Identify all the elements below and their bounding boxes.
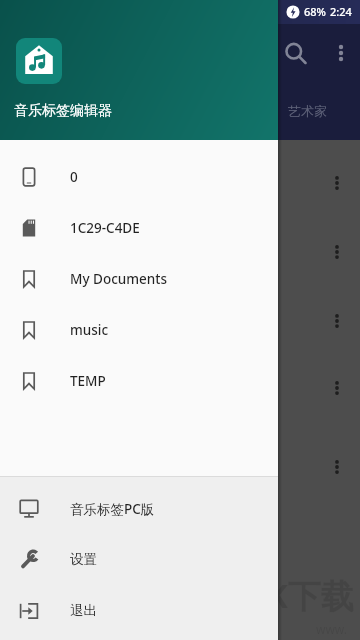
staticText: 设置 <box>70 551 97 568</box>
staticText: 0 <box>70 168 78 186</box>
button[interactable]: 设置 <box>0 534 278 585</box>
staticText: 退出 <box>70 602 97 619</box>
staticText: KK下载 <box>244 573 354 618</box>
button[interactable]: 0 <box>0 151 278 202</box>
button[interactable]: Item options <box>326 172 348 194</box>
button[interactable]: Item options <box>326 377 348 399</box>
staticText: 2:24 <box>330 4 352 19</box>
staticText: My Documents <box>70 270 167 288</box>
button[interactable]: 1C29-C4DE <box>0 202 278 253</box>
button[interactable]: TEMP <box>0 355 278 406</box>
staticText: 1C29-C4DE <box>70 219 140 237</box>
button[interactable]: music <box>0 304 278 355</box>
staticText: 68% <box>304 4 326 19</box>
button[interactable]: Item options <box>326 456 348 478</box>
button[interactable]: Search <box>282 40 310 68</box>
button[interactable]: Item options <box>326 310 348 332</box>
staticText: music <box>70 321 109 339</box>
staticText: 艺术家 <box>288 103 327 119</box>
button[interactable]: 退出 <box>0 585 278 636</box>
staticText: 音乐标签PC版 <box>70 500 155 518</box>
button[interactable]: Item options <box>326 241 348 263</box>
button[interactable]: My Documents <box>0 253 278 304</box>
button[interactable]: 音乐标签PC版 <box>0 483 278 534</box>
staticText: 音乐标签编辑器 <box>14 102 112 120</box>
button[interactable]: More options <box>328 40 354 66</box>
staticText: TEMP <box>70 372 106 390</box>
button[interactable]: App icon <box>16 38 62 84</box>
